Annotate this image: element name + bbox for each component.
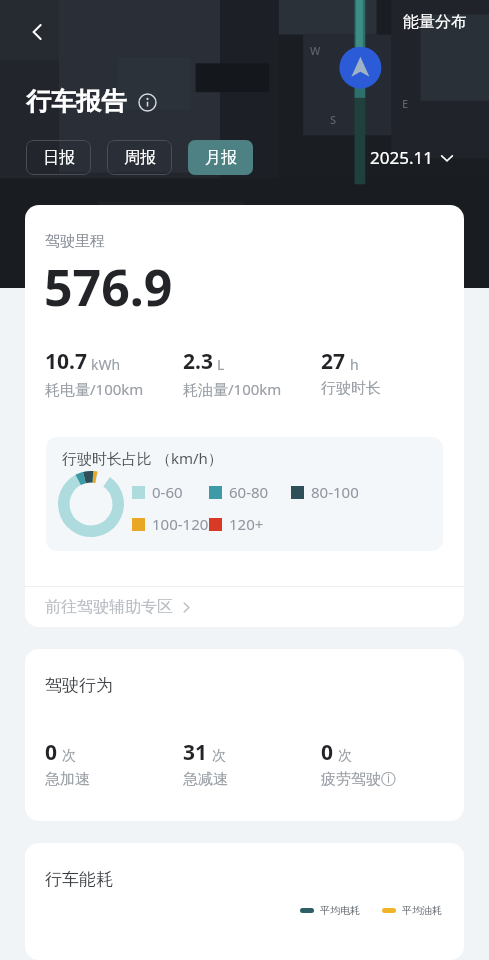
button[interactable]: 能量分布 <box>399 8 471 36</box>
staticText: 月报 <box>205 148 237 168</box>
staticText: 0-60 <box>152 482 183 502</box>
button[interactable]: 前往驾驶辅助专区 <box>25 587 464 627</box>
button[interactable]: 月报 <box>188 140 253 175</box>
staticText: 行驶时长 <box>321 379 381 398</box>
staticText: 80-100 <box>311 482 359 502</box>
staticText: 行驶时长占比 （km/h） <box>62 448 223 468</box>
button[interactable]: 周报 <box>107 140 172 175</box>
staticText: 次 <box>62 747 76 765</box>
staticText: 2025.11 <box>370 146 433 169</box>
staticText: 100-120 <box>152 514 209 534</box>
staticText: W <box>310 43 321 58</box>
staticText: 日报 <box>43 148 75 168</box>
staticText: 31 <box>183 738 208 767</box>
staticText: S <box>330 112 337 127</box>
staticText: 次 <box>212 747 226 765</box>
staticText: 能量分布 <box>403 12 467 32</box>
staticText: 驾驶行为 <box>45 675 113 696</box>
staticText: 行车能耗 <box>45 869 113 890</box>
staticText: 周报 <box>124 148 156 168</box>
staticText: kWh <box>91 355 121 374</box>
button[interactable]: 日报 <box>26 140 91 175</box>
staticText: 驾驶里程 <box>45 232 105 251</box>
staticText: 0 <box>321 738 334 767</box>
staticText: E <box>402 96 409 111</box>
staticText: 576.9 <box>44 253 173 321</box>
staticText: 平均电耗 <box>320 904 360 917</box>
staticText: 2.3 <box>183 347 213 376</box>
staticText: 耗油量/100km <box>183 379 282 399</box>
staticText: 疲劳驾驶ⓘ <box>321 770 396 789</box>
staticText: 120+ <box>229 514 264 534</box>
button[interactable]: Back <box>14 8 62 56</box>
staticText: L <box>217 355 225 374</box>
staticText: h <box>350 355 359 374</box>
staticText: 27 <box>321 347 346 376</box>
staticText: 60-80 <box>229 482 269 502</box>
button[interactable]: 2025.11 <box>368 144 456 171</box>
staticText: 急减速 <box>183 770 228 789</box>
button[interactable]: Info <box>136 91 158 113</box>
staticText: 平均油耗 <box>402 904 442 917</box>
staticText: 次 <box>338 747 352 765</box>
staticText: 前往驾驶辅助专区 <box>45 597 173 617</box>
staticText: 耗电量/100km <box>45 379 144 399</box>
staticText: 行车报告 <box>26 86 126 117</box>
staticText: 10.7 <box>45 347 87 376</box>
staticText: 急加速 <box>45 770 90 789</box>
staticText: 0 <box>45 738 58 767</box>
